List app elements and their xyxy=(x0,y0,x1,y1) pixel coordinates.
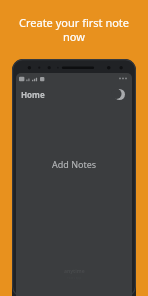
button[interactable]: Add Notes xyxy=(46,155,103,173)
button[interactable]: Toggle dark mode xyxy=(111,86,127,102)
staticText: anytime xyxy=(64,268,85,275)
staticText: Create your first note now xyxy=(18,15,130,44)
staticText: Home xyxy=(21,89,45,100)
staticText: Add Notes xyxy=(52,158,97,170)
